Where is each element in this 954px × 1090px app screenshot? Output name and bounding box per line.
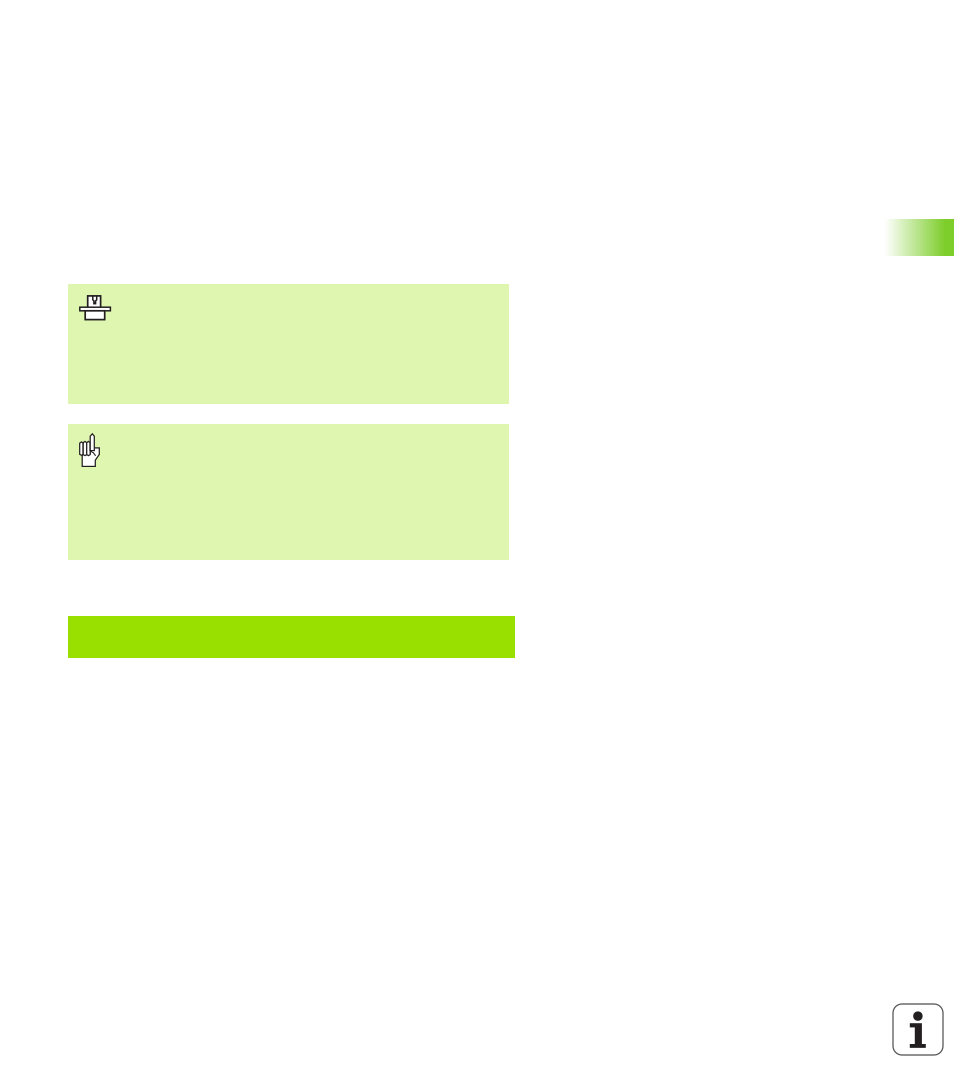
button[interactable]: Chapter tab	[881, 219, 954, 256]
button[interactable]: Please note	[68, 424, 509, 560]
button[interactable]: Machine manual note	[68, 284, 509, 404]
button[interactable]: Information	[893, 1004, 943, 1055]
